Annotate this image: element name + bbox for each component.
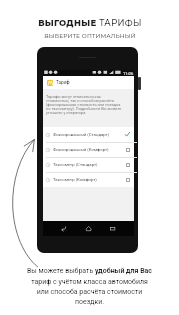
button[interactable]: Таксометр (Комфорт) <box>43 172 134 187</box>
button[interactable]: Logo <box>47 80 53 86</box>
staticText: Вы можете выбрать удобный для Вас тариф … <box>27 267 152 306</box>
button[interactable]: Home <box>82 222 94 234</box>
staticText: Таксометр (Комфорт) <box>53 177 97 182</box>
button[interactable]: Таксометр (Стандарт) <box>43 157 134 172</box>
staticText: Тарифы могут отличаться как стоимостью, … <box>46 94 124 115</box>
staticText: Тариф <box>56 80 70 85</box>
button[interactable]: Фиксированный (Комфорт) <box>43 142 134 157</box>
staticText: Таксометр (Стандарт) <box>53 162 98 167</box>
staticText: 11:06 <box>123 71 134 76</box>
button[interactable]: Recents <box>106 222 118 234</box>
button[interactable]: Фиксированный (Стандарт) <box>43 127 134 142</box>
staticText: Фиксированный (Комфорт) <box>53 147 109 152</box>
staticText: Фиксированный (Стандарт) <box>53 132 110 137</box>
button[interactable]: Back <box>57 222 69 234</box>
staticText: ВЫГОДНЫЕ ТАРИФЫ <box>38 18 142 28</box>
staticText: ВЫБЕРИТЕ ОПТИМАЛЬНЫЙ <box>44 32 136 39</box>
